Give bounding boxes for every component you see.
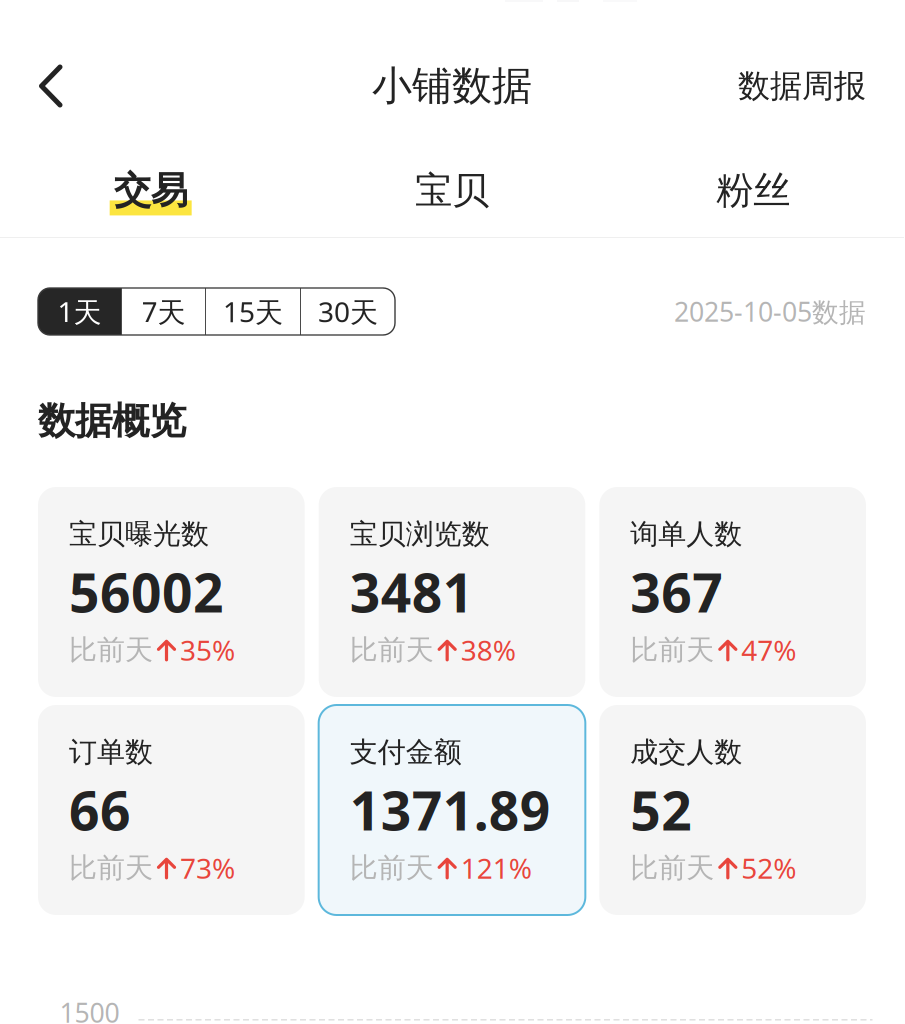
button[interactable]: 订单数	[38, 705, 305, 915]
staticText: 15天	[223, 293, 283, 330]
staticText: 66	[69, 774, 131, 845]
staticText: 1500	[59, 995, 119, 1024]
button[interactable]: 支付金额	[319, 705, 585, 915]
button[interactable]: 宝贝曝光数	[38, 487, 305, 697]
button[interactable]: 宝贝	[301, 164, 603, 224]
staticText: 比前天	[69, 633, 153, 667]
staticText: 367	[630, 556, 723, 627]
button[interactable]: Back	[0, 62, 130, 110]
staticText: 宝贝浏览数	[350, 517, 490, 551]
staticText: 52%	[741, 849, 796, 886]
staticText: 小铺数据	[372, 61, 532, 110]
staticText: 支付金额	[350, 735, 462, 769]
staticText: 30天	[318, 293, 378, 330]
staticText: 1371.89	[350, 774, 551, 845]
staticText: 比前天	[69, 851, 153, 885]
staticText: 成交人数	[630, 735, 742, 769]
button[interactable]: 宝贝浏览数	[319, 487, 585, 697]
staticText: 121%	[461, 849, 532, 886]
button[interactable]: 1天	[38, 288, 121, 335]
staticText: 订单数	[69, 735, 153, 769]
staticText: 47%	[741, 631, 796, 668]
staticText: 3481	[350, 556, 474, 627]
button[interactable]: 成交人数	[599, 705, 866, 915]
staticText: 数据周报	[738, 66, 866, 106]
button[interactable]: 交易	[0, 164, 301, 224]
button[interactable]: 7天	[122, 288, 205, 335]
staticText: 56002	[69, 556, 224, 627]
staticText: 比前天	[630, 633, 714, 667]
staticText: 询单人数	[630, 517, 742, 551]
staticText: 粉丝	[716, 168, 790, 213]
button[interactable]: 粉丝	[603, 164, 904, 224]
staticText: 数据概览	[38, 398, 186, 444]
staticText: 73%	[180, 849, 235, 886]
staticText: 7天	[141, 293, 185, 330]
button[interactable]: 15天	[206, 288, 300, 335]
button[interactable]: 数据周报	[738, 62, 904, 110]
staticText: 比前天	[630, 851, 714, 885]
staticText: 35%	[180, 631, 235, 668]
button[interactable]: 询单人数	[599, 487, 866, 697]
staticText: 2025-10-05数据	[674, 294, 866, 329]
staticText: 比前天	[350, 851, 434, 885]
button[interactable]: 30天	[301, 288, 395, 335]
staticText: 宝贝曝光数	[69, 517, 209, 551]
staticText: 38%	[461, 631, 516, 668]
staticText: 交易	[114, 168, 188, 213]
staticText: 比前天	[350, 633, 434, 667]
staticText: 1天	[57, 293, 101, 330]
staticText: 52	[630, 774, 692, 845]
staticText: 宝贝	[415, 168, 489, 213]
